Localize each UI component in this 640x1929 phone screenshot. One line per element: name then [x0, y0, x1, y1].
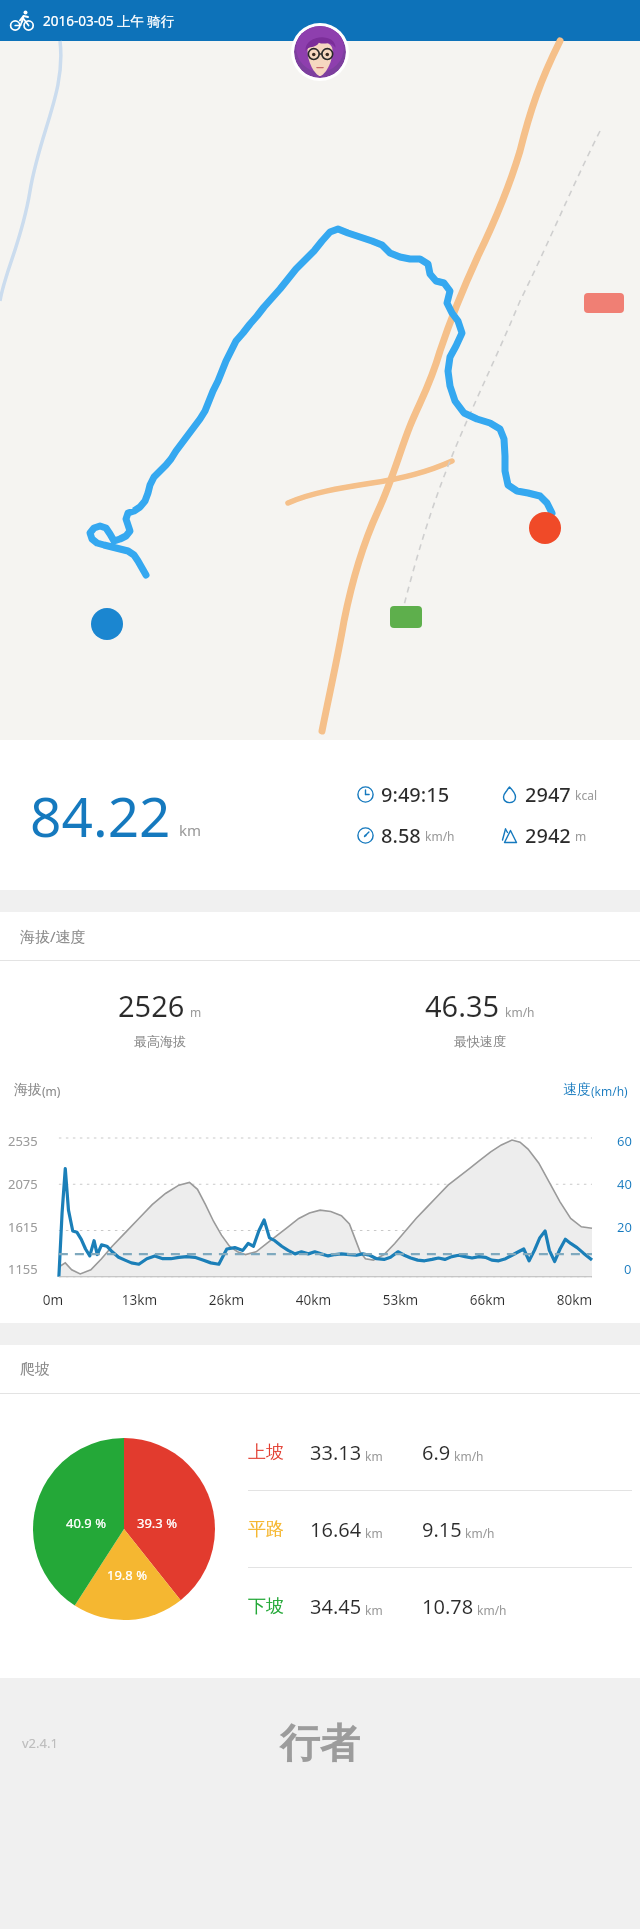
button[interactable]: Cycling activity	[9, 8, 35, 34]
staticText: km	[365, 1448, 383, 1464]
staticText: 2947	[525, 781, 571, 808]
staticText: 26km	[183, 1291, 270, 1309]
staticText: 2075	[8, 1175, 38, 1193]
staticText: 8.58	[381, 822, 421, 849]
staticText: km/h	[477, 1602, 507, 1618]
staticText: 爬坡	[20, 1360, 50, 1379]
staticText: (km/h)	[591, 1083, 628, 1099]
staticText: 6.9	[422, 1439, 451, 1466]
staticText: km	[179, 820, 202, 840]
staticText: 9:49:15	[381, 781, 450, 808]
staticText: 0	[624, 1260, 632, 1278]
staticText: km/h	[425, 828, 455, 844]
staticText: 40.9 %	[66, 1514, 106, 1532]
staticText: 最快速度	[454, 1033, 506, 1049]
staticText: 84.22	[30, 778, 171, 853]
staticText: km/h	[454, 1448, 484, 1464]
staticText: 2942	[525, 822, 571, 849]
button[interactable]: Route map	[0, 41, 640, 740]
staticText: km	[365, 1525, 383, 1541]
button[interactable]: 下坡	[248, 1568, 632, 1644]
button[interactable]: 上坡	[248, 1414, 632, 1490]
staticText: kcal	[575, 787, 597, 803]
staticText: 80km	[531, 1291, 618, 1309]
staticText: 1615	[8, 1218, 38, 1236]
staticText: 16.64	[310, 1516, 362, 1543]
staticText: 下坡	[248, 1595, 310, 1618]
staticText: 39.3 %	[137, 1514, 177, 1532]
staticText: 40km	[270, 1291, 357, 1309]
staticText: 33.13	[310, 1439, 362, 1466]
staticText: (m)	[42, 1083, 61, 1099]
staticText: v2.4.1	[22, 1734, 58, 1752]
staticText: km	[365, 1602, 383, 1618]
staticText: 34.45	[310, 1593, 362, 1620]
staticText: 10.78	[422, 1593, 474, 1620]
staticText: m	[190, 1004, 202, 1020]
staticText: 13km	[96, 1291, 183, 1309]
staticText: m	[575, 828, 587, 844]
staticText: km/h	[465, 1525, 495, 1541]
staticText: km/h	[505, 1004, 535, 1020]
staticText: 速度	[563, 1081, 591, 1099]
staticText: 46.35	[425, 986, 500, 1025]
staticText: 海拔/速度	[20, 926, 86, 946]
button[interactable]: 平路	[248, 1491, 632, 1567]
staticText: 60	[617, 1132, 632, 1150]
staticText: 上坡	[248, 1441, 310, 1464]
staticText: 9.15	[422, 1516, 462, 1543]
staticText: 19.8 %	[107, 1566, 147, 1584]
staticText: 2016-03-05 上午 骑行	[43, 12, 175, 30]
staticText: 66km	[444, 1291, 531, 1309]
staticText: 2535	[8, 1132, 38, 1150]
staticText: 最高海拔	[134, 1033, 186, 1049]
staticText: 20	[617, 1218, 632, 1236]
staticText: 2526	[118, 986, 185, 1025]
staticText: 行者	[280, 1718, 360, 1768]
staticText: 40	[617, 1175, 632, 1193]
staticText: 53km	[357, 1291, 444, 1309]
staticText: 0m	[10, 1291, 96, 1309]
staticText: 海拔	[14, 1081, 42, 1099]
button[interactable]: Profile avatar	[291, 23, 349, 81]
staticText: 1155	[8, 1260, 38, 1278]
staticText: 平路	[248, 1518, 310, 1541]
